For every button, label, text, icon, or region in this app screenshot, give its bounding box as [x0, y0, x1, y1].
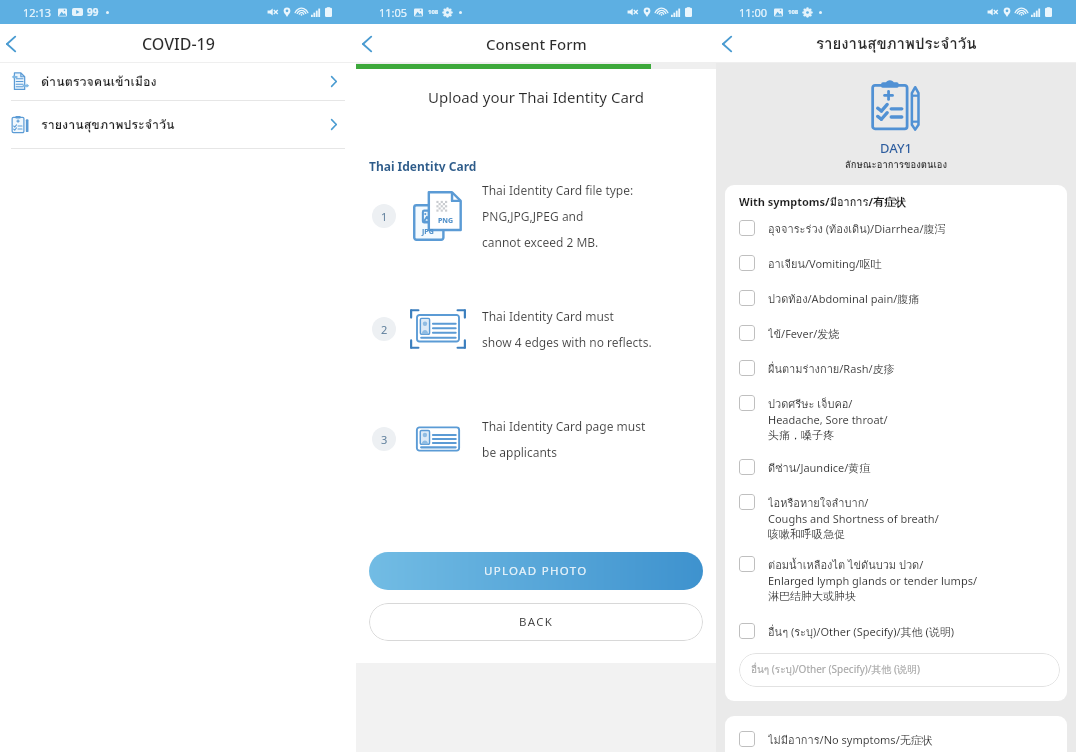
staticText: ผื่นตามร่างกาย/Rash/皮疹 — [768, 360, 895, 376]
staticText: JPG — [422, 227, 434, 237]
staticText: อื่นๆ (ระบุ)/Other (Specify)/其他 (说明) — [751, 662, 921, 678]
button[interactable]: อุจจาระร่วง (ท้องเดิน)/Diarrhea/腹泻 — [739, 220, 1060, 236]
staticText: PNG — [438, 216, 454, 226]
staticText: Thai Identity Card page must — [482, 418, 646, 434]
staticText: Consent Form — [486, 34, 587, 54]
button[interactable]: Back — [716, 24, 738, 63]
staticText: Headache, Sore throat/ — [768, 412, 888, 427]
staticText: Thai Identity Card — [369, 158, 477, 172]
staticText: be applicants — [482, 444, 557, 460]
staticText: 1 — [381, 209, 388, 224]
staticText: ลักษณะอาการของตนเอง — [716, 157, 1076, 172]
button[interactable]: Back — [0, 24, 22, 63]
staticText: 108 — [788, 8, 799, 16]
button[interactable]: อื่นๆ (ระบุ)/Other (Specify)/其他 (说明) — [739, 623, 1060, 639]
button[interactable]: ผื่นตามร่างกาย/Rash/皮疹 — [739, 360, 1060, 376]
staticText: ปวดศรีษะ เจ็บคอ/ — [768, 395, 853, 411]
staticText: PNG,JPG,JPEG and — [482, 208, 584, 224]
staticText: ด่านตรวจคนเข้าเมือง — [41, 72, 157, 92]
button[interactable]: ปวดศรีษะ เจ็บคอ/ — [739, 395, 1060, 443]
staticText: BACK — [519, 614, 554, 630]
staticText: DAY1 — [716, 139, 1076, 157]
staticText: ไม่มีอาการ/No symptoms/无症状 — [768, 731, 933, 747]
button[interactable]: อาเจียน/Vomiting/呕吐 — [739, 255, 1060, 271]
staticText: 淋巴结肿大或肿块 — [768, 589, 856, 603]
staticText: With symptoms/มีอาการ/有症状 — [739, 193, 906, 210]
staticText: 108 — [428, 8, 439, 16]
button[interactable]: ดีซ่าน/Jaundice/黄疸 — [739, 459, 1060, 475]
staticText: รายงานสุขภาพประจำวัน — [41, 115, 175, 135]
staticText: ปวดท้อง/Abdominal pain/腹痛 — [768, 290, 920, 306]
staticText: 头痛，嗓子疼 — [768, 428, 834, 442]
button[interactable]: UPLOAD PHOTO — [369, 552, 703, 590]
staticText: Coughs and Shortness of breath/ — [768, 511, 939, 526]
staticText: อุจจาระร่วง (ท้องเดิน)/Diarrhea/腹泻 — [768, 220, 946, 236]
button[interactable]: ด่านตรวจคนเข้าเมือง — [0, 63, 356, 101]
staticText: ต่อมน้ำเหลืองไต ไข่ดันบวม ปวด/ — [768, 556, 924, 572]
staticText: 11:05 — [379, 5, 408, 20]
staticText: 咳嗽和呼吸急促 — [768, 527, 845, 541]
staticText: 12:13 — [23, 5, 52, 20]
staticText: show 4 edges with no reflects. — [482, 334, 652, 350]
button[interactable]: ไข้/Fever/发烧 — [739, 325, 1060, 341]
staticText: รายงานสุขภาพประจำวัน — [816, 32, 977, 56]
button[interactable]: รายงานสุขภาพประจำวัน — [0, 101, 356, 149]
staticText: อื่นๆ (ระบุ)/Other (Specify)/其他 (说明) — [768, 623, 955, 639]
staticText: ไข้/Fever/发烧 — [768, 325, 840, 341]
button[interactable]: Back — [356, 24, 378, 63]
button[interactable]: ต่อมน้ำเหลืองไต ไข่ดันบวม ปวด/ — [739, 556, 1060, 604]
staticText: UPLOAD PHOTO — [484, 563, 588, 579]
staticText: Upload your Thai Identity Card — [356, 87, 716, 107]
button[interactable]: ไม่มีอาการ/No symptoms/无症状 — [739, 731, 1060, 747]
staticText: 99 — [87, 5, 99, 19]
staticText: ดีซ่าน/Jaundice/黄疸 — [768, 459, 871, 475]
staticText: 3 — [381, 432, 388, 447]
staticText: Thai Identity Card must — [482, 308, 614, 324]
staticText: ไอหรือหายใจลำบาก/ — [768, 494, 869, 510]
button[interactable]: BACK — [369, 603, 703, 641]
staticText: 11:00 — [739, 5, 768, 20]
button[interactable]: ไอหรือหายใจลำบาก/ — [739, 494, 1060, 542]
button[interactable]: ปวดท้อง/Abdominal pain/腹痛 — [739, 290, 1060, 306]
staticText: 2 — [381, 322, 388, 337]
staticText: อาเจียน/Vomiting/呕吐 — [768, 255, 882, 271]
staticText: Enlarged lymph glands or tender lumps/ — [768, 573, 978, 588]
staticText: COVID-19 — [142, 33, 215, 55]
staticText: Thai Identity Card file type: — [482, 182, 634, 198]
staticText: cannot exceed 2 MB. — [482, 234, 599, 250]
